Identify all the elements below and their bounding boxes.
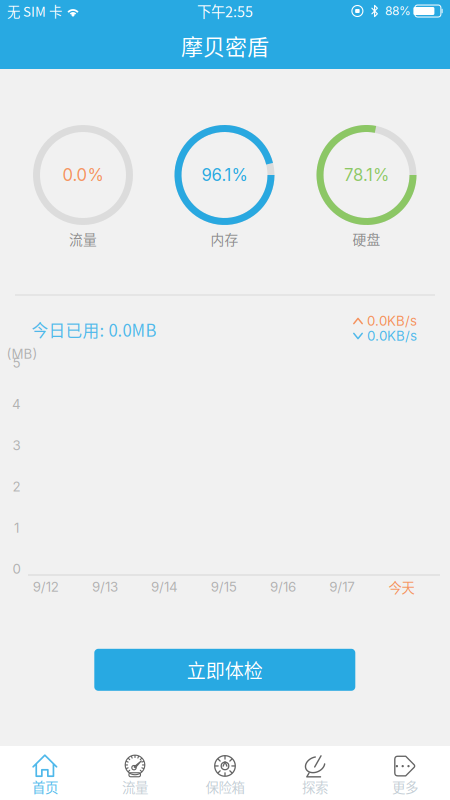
button[interactable]: 保险箱 <box>180 746 270 800</box>
staticText: 9/17 <box>329 579 355 595</box>
staticText: 首页 <box>32 777 58 796</box>
staticText: 今天 <box>389 577 415 597</box>
staticText: 9/12 <box>33 579 59 595</box>
staticText: 1 <box>14 520 19 536</box>
button[interactable]: 探索 <box>270 746 360 800</box>
staticText: 9/15 <box>211 579 237 595</box>
staticText: 3 <box>12 437 20 453</box>
staticText: (MB) <box>6 346 37 362</box>
staticText: 探索 <box>302 777 328 796</box>
staticText: 78.1% <box>344 165 389 185</box>
staticText: 内存 <box>210 229 238 249</box>
button[interactable]: 首页 <box>0 746 90 800</box>
staticText: 5 <box>12 355 20 371</box>
staticText: 今日已用: 0.0MB <box>31 317 156 341</box>
staticText: 更多 <box>392 777 418 796</box>
staticText: 88% <box>385 4 411 18</box>
staticText: 保险箱 <box>205 777 244 796</box>
staticText: 流量 <box>69 229 97 249</box>
button[interactable]: 流量 <box>90 746 180 800</box>
button[interactable]: 立即体检 <box>94 649 355 691</box>
staticText: 流量 <box>122 777 148 796</box>
staticText: 2 <box>12 478 20 495</box>
staticText: 摩贝密盾 <box>181 30 269 61</box>
staticText: 0 <box>12 561 20 577</box>
staticText: 0.0% <box>62 165 103 185</box>
staticText: 9/13 <box>92 579 118 595</box>
button[interactable]: 更多 <box>360 746 450 800</box>
staticText: 0.0KB/s <box>367 313 417 329</box>
staticText: 9/16 <box>270 579 296 595</box>
staticText: 9/14 <box>151 579 178 595</box>
staticText: 0.0KB/s <box>367 328 417 344</box>
staticText: 硬盘 <box>352 229 380 249</box>
staticText: 4 <box>12 396 21 412</box>
staticText: 96.1% <box>201 165 247 185</box>
staticText: 立即体检 <box>187 656 263 684</box>
staticText: 下午2:55 <box>197 1 253 21</box>
staticText: 无 SIM 卡 <box>7 1 62 21</box>
